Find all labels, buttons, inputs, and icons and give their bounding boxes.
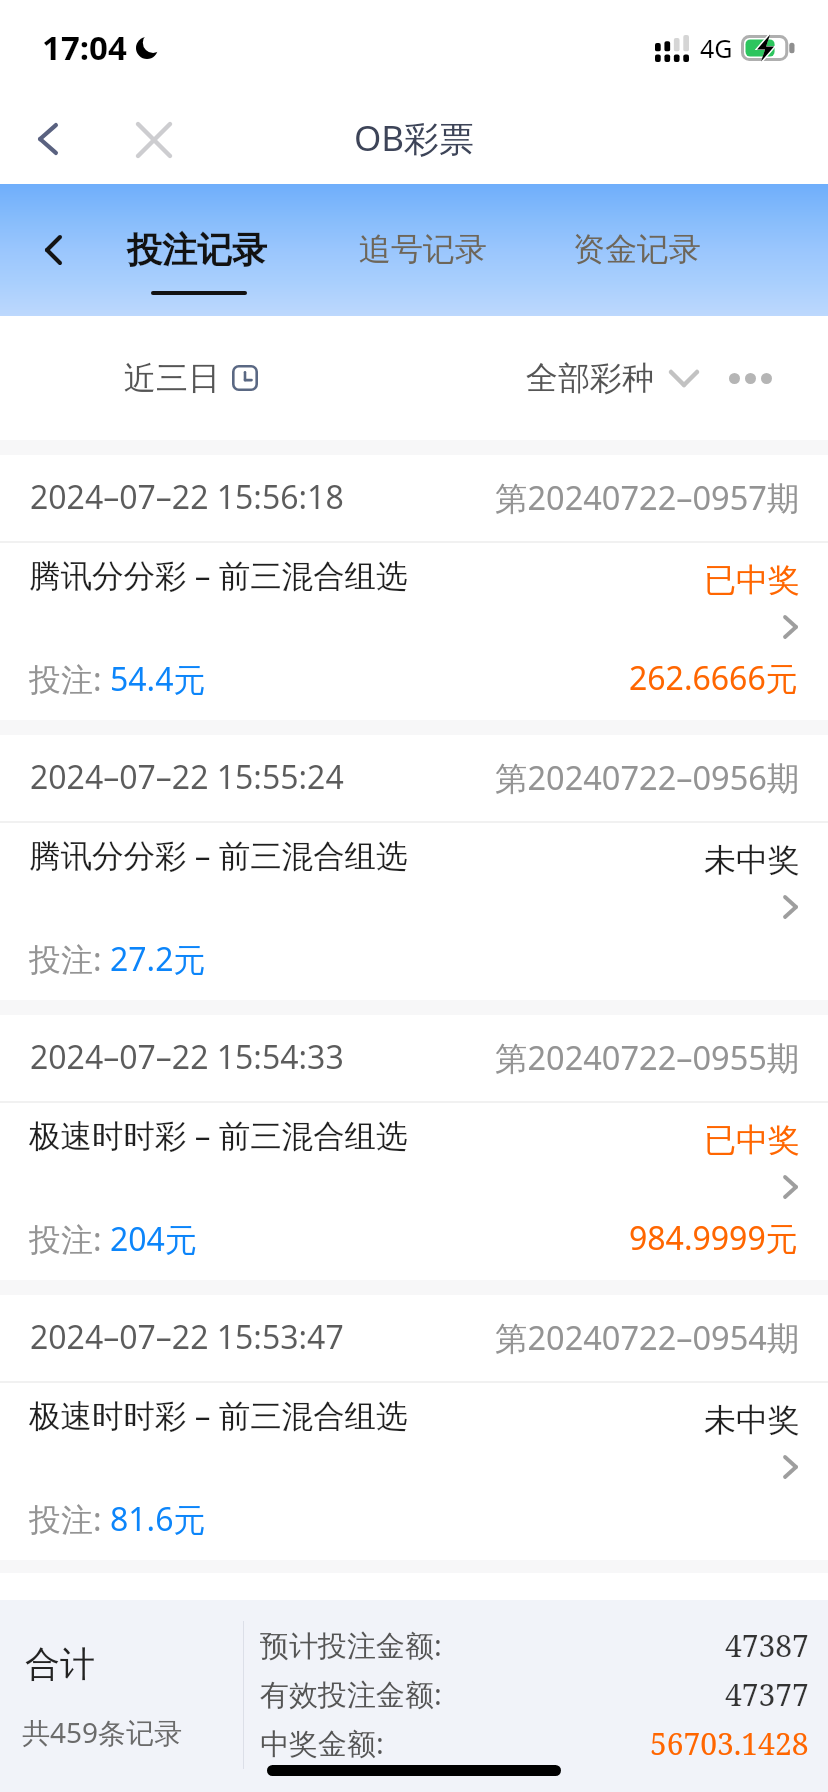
staticText: 腾讯分分彩 – 前三混合组选: [29, 553, 408, 596]
button[interactable]: 2024–07–22 15:54:33: [0, 1015, 828, 1280]
staticText: 投注:: [29, 1217, 110, 1261]
staticText: 近三日: [124, 358, 220, 398]
staticText: 2024–07–22 15:54:33: [30, 1035, 344, 1079]
button[interactable]: More options: [729, 373, 772, 384]
staticText: 未中奖: [704, 1400, 800, 1440]
button[interactable]: 2024–07–22 15:56:18: [0, 455, 828, 720]
button[interactable]: Back: [9, 100, 87, 178]
staticText: 第20240722–0954期: [495, 1315, 800, 1359]
button[interactable]: 追号记录: [353, 184, 493, 316]
staticText: 极速时时彩 – 前三混合组选: [29, 1113, 408, 1156]
staticText: 47387: [725, 1625, 809, 1666]
staticText: 腾讯分分彩 – 前三混合组选: [29, 833, 408, 876]
button[interactable]: 投注记录: [122, 184, 272, 316]
staticText: 投注:: [29, 1497, 110, 1541]
button[interactable]: Close: [115, 101, 193, 179]
staticText: 984.9999元: [629, 1216, 798, 1260]
staticText: 81.6元: [110, 1497, 206, 1541]
staticText: 47377: [725, 1674, 809, 1715]
staticText: 已中奖: [704, 1120, 800, 1160]
staticText: 第20240722–0956期: [495, 755, 800, 799]
staticText: 追号记录: [359, 229, 487, 269]
staticText: 全部彩种: [526, 358, 654, 398]
staticText: 17:04: [42, 25, 127, 70]
staticText: 资金记录: [573, 229, 701, 269]
staticText: 有效投注金额:: [260, 1674, 442, 1714]
staticText: 262.6666元: [629, 656, 798, 700]
button[interactable]: 2024–07–22 15:55:24: [0, 735, 828, 1000]
staticText: 54.4元: [110, 657, 206, 701]
button[interactable]: 2024–07–22 15:53:47: [0, 1295, 828, 1560]
button[interactable]: 资金记录: [567, 184, 707, 316]
staticText: 2024–07–22 15:55:24: [30, 755, 344, 799]
staticText: 4G: [700, 31, 733, 65]
staticText: 未中奖: [704, 840, 800, 880]
staticText: OB彩票: [354, 114, 475, 162]
staticText: 投注:: [29, 657, 110, 701]
staticText: 共459条记录: [22, 1713, 183, 1751]
staticText: 27.2元: [110, 937, 206, 981]
staticText: 中奖金额:: [260, 1723, 384, 1763]
staticText: 2024–07–22 15:56:18: [30, 475, 344, 519]
staticText: 投注记录: [127, 228, 267, 272]
button[interactable]: 全部彩种: [526, 358, 699, 398]
button[interactable]: 近三日: [124, 358, 258, 398]
staticText: 第20240722–0955期: [495, 1035, 800, 1079]
staticText: 极速时时彩 – 前三混合组选: [29, 1393, 408, 1436]
staticText: 合计: [25, 1642, 95, 1686]
staticText: 第20240722–0957期: [495, 475, 800, 519]
staticText: 投注:: [29, 937, 110, 981]
staticText: 已中奖: [704, 560, 800, 600]
staticText: 56703.1428: [650, 1723, 809, 1764]
staticText: 2024–07–22 15:53:47: [30, 1315, 344, 1359]
staticText: 预计投注金额:: [260, 1625, 442, 1665]
staticText: 204元: [110, 1217, 197, 1261]
button[interactable]: Back: [14, 211, 92, 289]
